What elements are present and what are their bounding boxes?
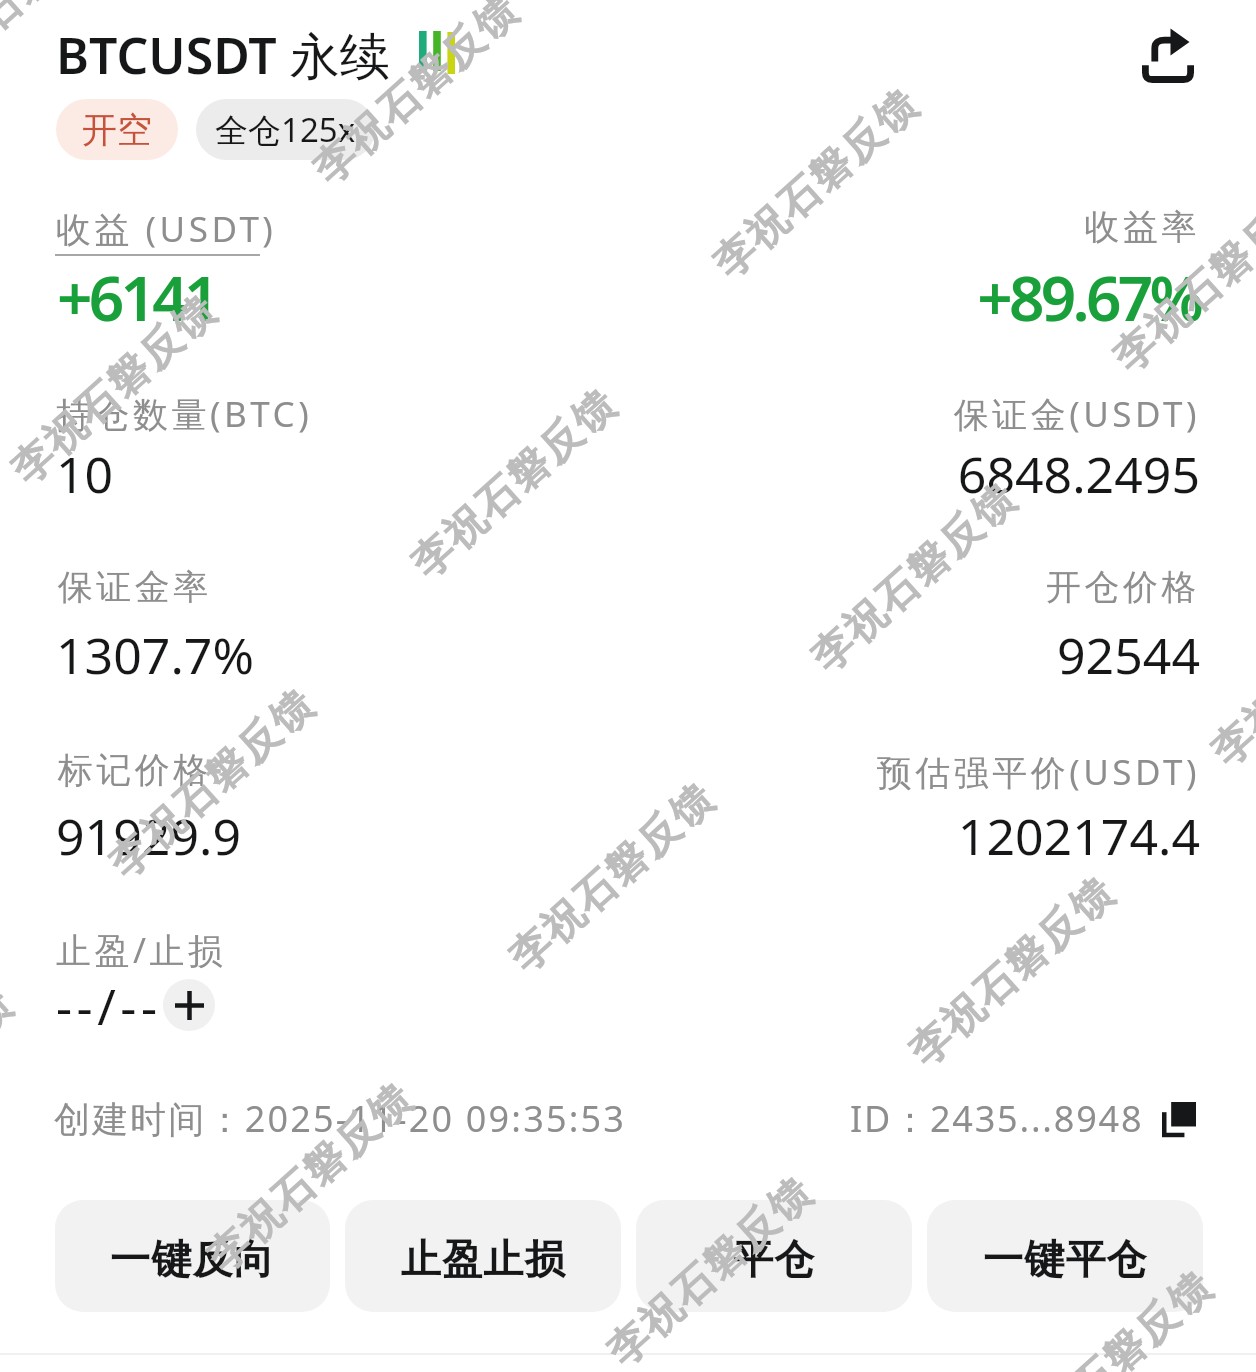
staticText: 李祝石磐反馈 bbox=[801, 472, 1028, 684]
staticText: ID：2435...8948 bbox=[850, 1094, 1144, 1143]
staticText: 李祝石磐反馈 bbox=[303, 0, 530, 196]
staticText: 标记价格 bbox=[56, 748, 210, 792]
staticText: 李祝石磐反馈 bbox=[499, 772, 726, 984]
staticText: 创建时间：2025-11-20 09:35:53 bbox=[54, 1094, 626, 1143]
staticText: +6141 bbox=[57, 255, 216, 339]
staticText: 保证金(USDT) bbox=[0, 390, 1200, 438]
staticText: 开空 bbox=[82, 108, 152, 152]
button[interactable]: 止盈止损 bbox=[345, 1200, 621, 1312]
staticText: 李祝石磐反馈 bbox=[197, 1072, 424, 1284]
staticText: 李祝石磐反馈 bbox=[0, 978, 24, 1190]
staticText: 6848.2495 bbox=[0, 440, 1200, 508]
staticText: --/-- bbox=[56, 972, 162, 1040]
staticText: 一键反向 bbox=[110, 1234, 275, 1284]
button[interactable]: Share bbox=[1138, 24, 1198, 84]
button[interactable]: 一键平仓 bbox=[927, 1200, 1203, 1312]
staticText: 92544 bbox=[0, 621, 1200, 689]
staticText: 平仓 bbox=[733, 1234, 816, 1284]
staticText: 止盈/止损 bbox=[56, 926, 227, 974]
staticText: 1307.7% bbox=[56, 621, 254, 689]
staticText: 保证金率 bbox=[56, 565, 210, 609]
staticText: 李祝石磐反馈 bbox=[401, 378, 628, 590]
staticText: 1202174.4 bbox=[0, 802, 1200, 870]
staticText: 李祝石磐反馈 bbox=[703, 78, 930, 290]
staticText: 李祝石磐反馈 bbox=[1201, 566, 1256, 778]
staticText: BTCUSDT 永续 bbox=[56, 21, 390, 89]
staticText: 李祝石磐反馈 bbox=[997, 1260, 1224, 1372]
staticText: 预估强平价(USDT) bbox=[0, 748, 1200, 796]
staticText: 李祝石磐反馈 bbox=[1103, 172, 1256, 384]
staticText: 李祝石磐反馈 bbox=[597, 1166, 824, 1372]
staticText: 李祝石磐反馈 bbox=[899, 866, 1126, 1078]
staticText: 一键平仓 bbox=[983, 1234, 1148, 1284]
staticText: 李祝石磐反馈 bbox=[99, 678, 326, 890]
button[interactable]: 开空 bbox=[56, 99, 178, 160]
staticText: 收益率 bbox=[0, 205, 1200, 249]
staticText: 91929.9 bbox=[56, 802, 241, 870]
staticText: 全仓125x bbox=[215, 107, 356, 152]
staticText: 开仓价格 bbox=[0, 565, 1200, 609]
button[interactable]: 全仓125x bbox=[196, 99, 375, 160]
staticText: 止盈止损 bbox=[401, 1234, 566, 1284]
button[interactable]: Copy ID bbox=[1159, 1099, 1199, 1139]
staticText: 持仓数量(BTC) bbox=[56, 390, 313, 438]
staticText: +89.67% bbox=[0, 255, 1200, 339]
staticText: 收益 (USDT) bbox=[56, 205, 277, 253]
button[interactable]: 一键反向 bbox=[55, 1200, 330, 1312]
staticText: 10 bbox=[56, 440, 114, 508]
staticText: 李祝石磐反馈 bbox=[0, 0, 130, 102]
button[interactable]: Add take profit and stop loss bbox=[163, 979, 215, 1031]
staticText: 李祝石磐反馈 bbox=[1, 284, 228, 496]
button[interactable]: 平仓 bbox=[636, 1200, 912, 1312]
